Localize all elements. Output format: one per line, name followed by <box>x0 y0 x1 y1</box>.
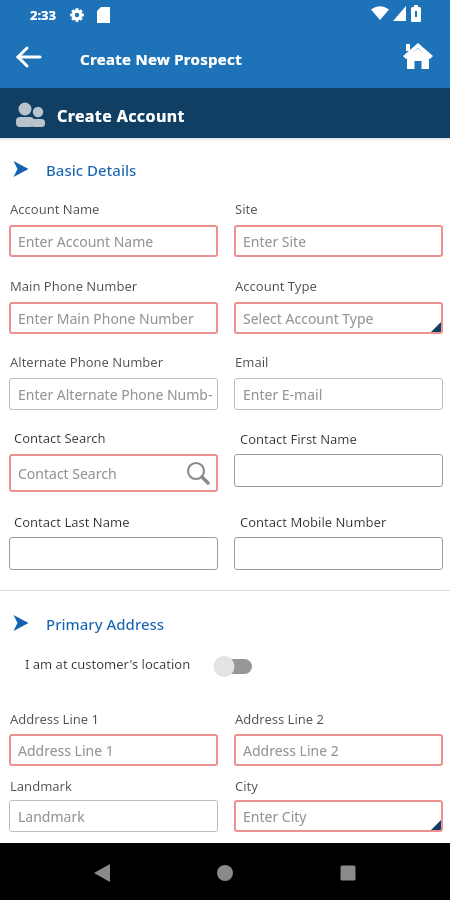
button[interactable] <box>207 855 243 891</box>
staticText: Enter Alternate Phone Numb‑ <box>18 385 213 404</box>
staticText: Primary Address <box>46 614 165 634</box>
button[interactable]: Select Account Type <box>234 302 443 334</box>
staticText: Contact Search <box>14 429 106 447</box>
button[interactable]: Address Line 2 <box>234 734 443 766</box>
staticText: Enter Main Phone Number <box>18 309 194 328</box>
staticText: Alternate Phone Number <box>10 353 164 371</box>
button[interactable]: Address Line 1 <box>9 734 218 766</box>
button[interactable] <box>234 454 443 487</box>
staticText: Contact Last Name <box>14 513 130 531</box>
button[interactable]: Enter Main Phone Number <box>9 302 218 334</box>
staticText: Contact Mobile Number <box>240 513 387 531</box>
staticText: Create New Prospect <box>80 49 242 69</box>
button[interactable] <box>400 42 436 74</box>
staticText: 2:33 <box>30 6 56 24</box>
staticText: Enter E-mail <box>243 385 323 404</box>
staticText: Address Line 1 <box>10 710 99 728</box>
staticText: Landmark <box>10 777 72 795</box>
button[interactable]: Enter Account Name <box>9 225 218 257</box>
staticText: Email <box>235 353 269 371</box>
staticText: Create Account <box>57 105 185 127</box>
staticText: Account Type <box>235 277 317 295</box>
button[interactable]: Contact Search <box>9 454 218 492</box>
staticText: Address Line 2 <box>235 710 324 728</box>
button[interactable] <box>330 855 366 891</box>
staticText: Landmark <box>18 807 85 826</box>
staticText: Enter Account Name <box>18 232 154 251</box>
staticText: Basic Details <box>46 160 137 180</box>
button[interactable] <box>0 88 450 138</box>
button[interactable]: Landmark <box>9 800 218 832</box>
staticText: City <box>235 777 258 795</box>
staticText: Enter City <box>243 807 307 826</box>
button[interactable] <box>9 537 218 570</box>
staticText: Address Line 1 <box>18 741 114 760</box>
staticText: Address Line 2 <box>243 741 339 760</box>
button[interactable] <box>210 652 256 680</box>
staticText: Contact First Name <box>240 430 357 448</box>
staticText: Enter Site <box>243 232 307 251</box>
button[interactable] <box>234 537 443 570</box>
staticText: I am at customer's location <box>25 655 191 673</box>
button[interactable]: Enter Site <box>234 225 443 257</box>
button[interactable] <box>85 855 121 891</box>
staticText: Select Account Type <box>243 309 374 328</box>
staticText: Site <box>235 200 258 218</box>
button[interactable]: Enter Alternate Phone Numb‑ <box>9 378 218 410</box>
button[interactable]: Enter E-mail <box>234 378 443 410</box>
button[interactable] <box>10 42 44 76</box>
button[interactable]: Enter City <box>234 800 443 832</box>
staticText: Account Name <box>10 200 100 218</box>
staticText: Contact Search <box>18 464 117 483</box>
staticText: Main Phone Number <box>10 277 138 295</box>
